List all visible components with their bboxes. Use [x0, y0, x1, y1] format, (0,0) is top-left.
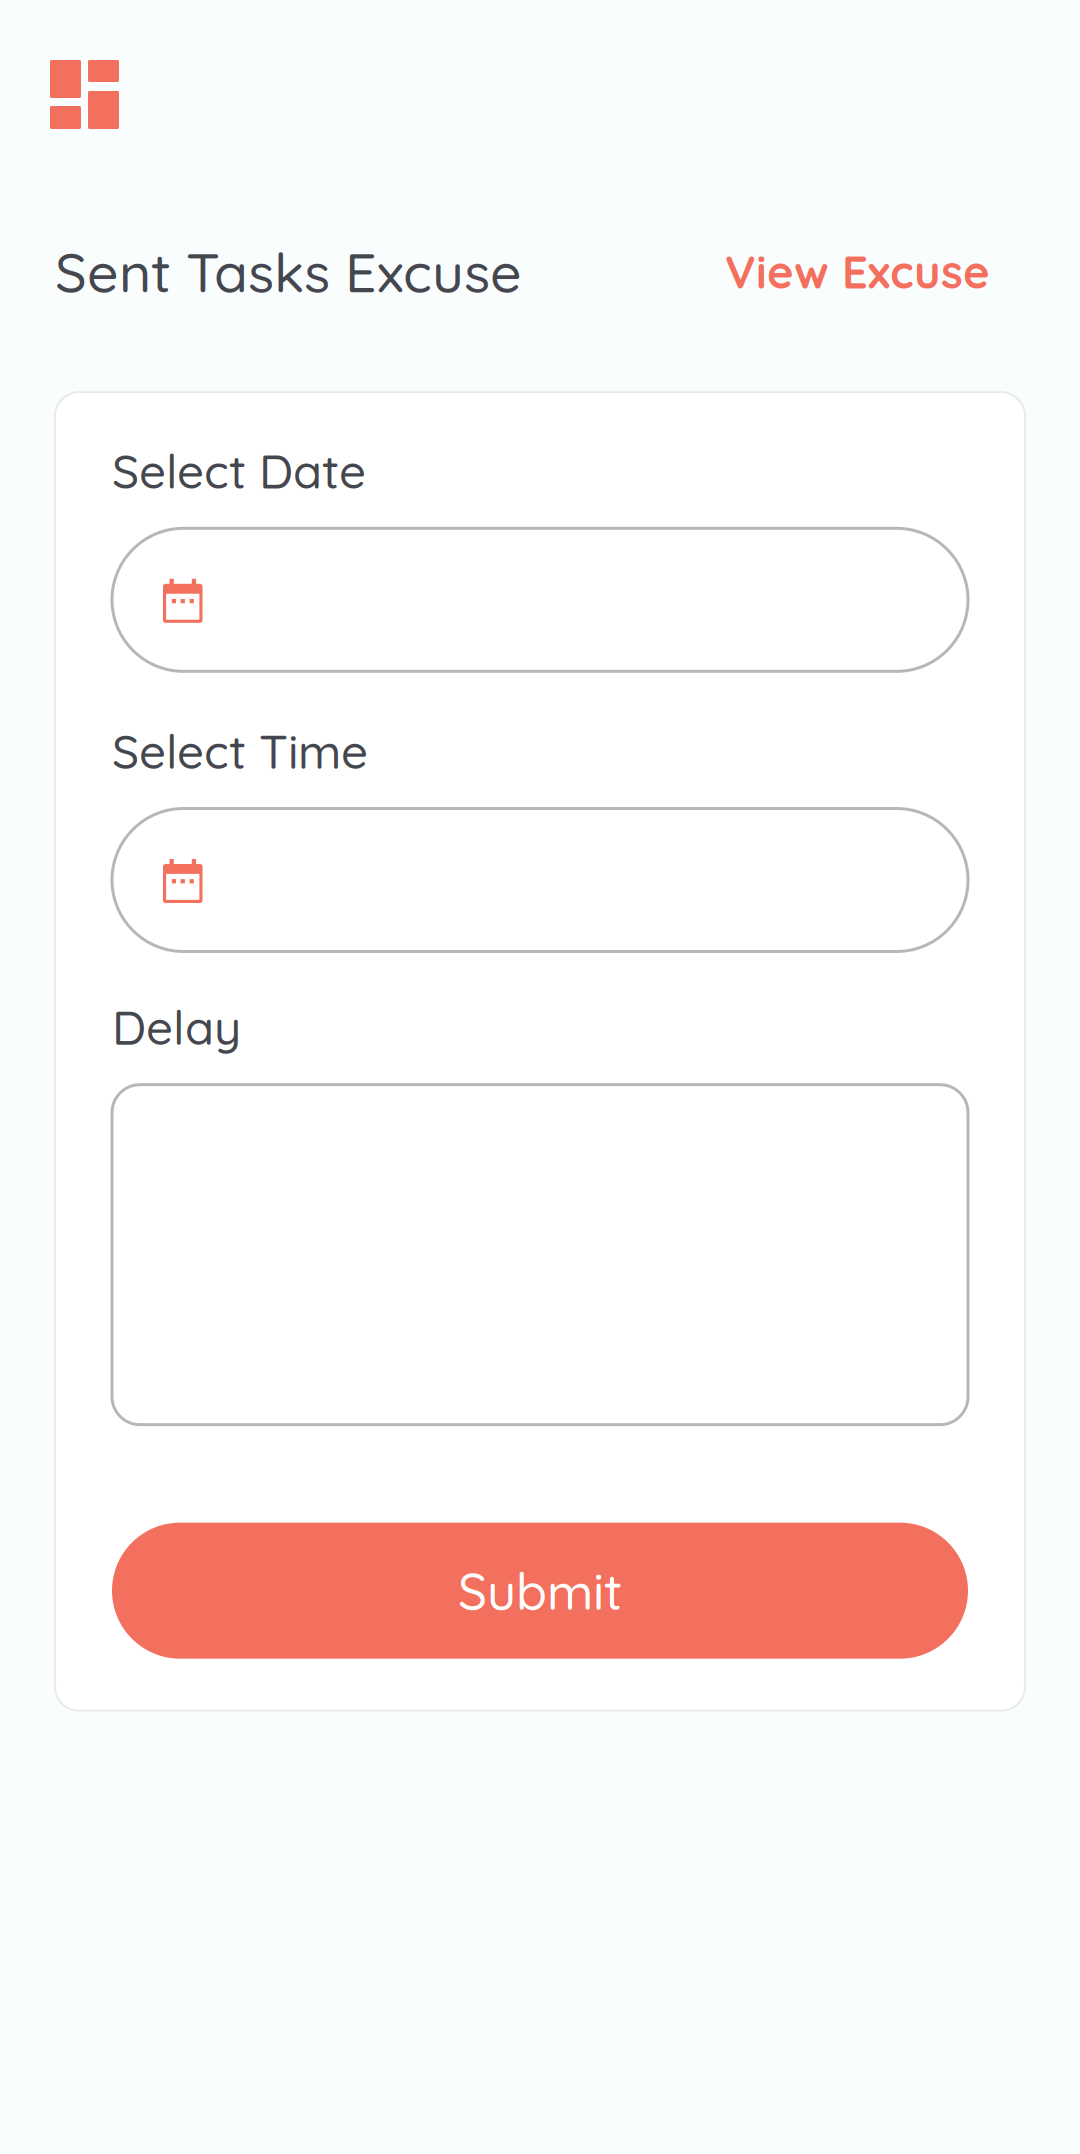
button[interactable]: Pick a value	[112, 808, 968, 951]
staticText: View Excuse	[725, 243, 990, 300]
button[interactable]: View Excuse	[725, 243, 990, 300]
staticText: Delay	[112, 997, 241, 1057]
button[interactable]: Dashboard	[50, 60, 119, 129]
button[interactable]: Delay reason	[112, 1085, 968, 1425]
staticText: Select Time	[112, 721, 368, 780]
staticText: Submit	[458, 1559, 622, 1622]
staticText: Select Date	[112, 441, 366, 500]
button[interactable]: Submit	[112, 1523, 968, 1659]
staticText: Sent Tasks Excuse	[55, 237, 522, 306]
button[interactable]: Pick a value	[112, 528, 968, 671]
